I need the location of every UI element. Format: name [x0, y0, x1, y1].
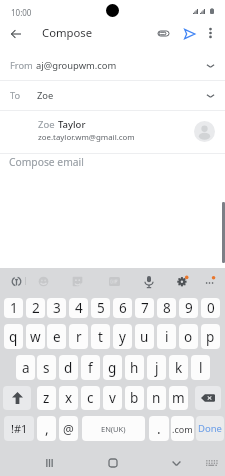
staticText: zoe.taylor.wm@gmail.com	[38, 132, 135, 143]
button[interactable]: s	[37, 355, 56, 380]
button[interactable]: Attach file	[152, 22, 175, 45]
button[interactable]: p	[201, 324, 220, 349]
button[interactable]: a	[16, 355, 35, 380]
staticText: Zoe	[38, 118, 58, 131]
button[interactable]: 6	[113, 298, 132, 318]
staticText: @	[63, 421, 74, 437]
button[interactable]: EN(UK)	[82, 416, 145, 441]
staticText: Zoe	[37, 89, 54, 102]
button[interactable]: j	[147, 355, 166, 380]
button[interactable]: To	[0, 81, 225, 110]
button[interactable]: Done	[196, 416, 224, 441]
staticText: EN(UK)	[101, 424, 126, 434]
staticText: z	[43, 389, 50, 407]
button[interactable]: n	[147, 386, 166, 410]
button[interactable]: 9	[179, 298, 198, 318]
button[interactable]: More options	[199, 22, 221, 44]
staticText: l	[199, 359, 203, 377]
staticText: h	[130, 359, 139, 377]
staticText: ,	[45, 420, 49, 438]
button[interactable]: @	[59, 416, 78, 441]
button[interactable]: 5	[91, 298, 110, 318]
button[interactable]: Settings	[173, 271, 193, 291]
button[interactable]: u	[135, 324, 154, 349]
button[interactable]: r	[69, 324, 88, 349]
staticText: c	[87, 389, 94, 407]
button[interactable]: .	[149, 416, 169, 441]
button[interactable]: o	[179, 324, 198, 349]
staticText: 8	[163, 299, 171, 317]
button[interactable]: 0	[201, 298, 220, 318]
button[interactable]: 3	[47, 298, 66, 318]
button[interactable]: Voice input	[139, 272, 159, 292]
button[interactable]: l	[191, 355, 210, 380]
staticText: To	[10, 89, 21, 102]
button[interactable]: 7	[135, 298, 154, 318]
staticText: m	[172, 389, 185, 407]
button[interactable]: h	[125, 355, 144, 380]
button[interactable]: c	[81, 386, 100, 410]
staticText: x	[65, 389, 73, 407]
button[interactable]: Google	[6, 271, 26, 291]
staticText: i	[165, 328, 169, 346]
button[interactable]: q	[4, 324, 23, 349]
button[interactable]: Compose email	[0, 154, 225, 178]
button[interactable]: !#1	[4, 416, 34, 441]
button[interactable]: x	[59, 386, 78, 410]
staticText: Done	[198, 422, 222, 435]
button[interactable]: 2	[26, 298, 45, 318]
button[interactable]: Back	[4, 22, 27, 45]
button[interactable]: g	[103, 355, 122, 380]
staticText: w	[30, 328, 41, 346]
staticText: 7	[141, 299, 149, 317]
staticText: Taylor	[58, 118, 86, 131]
button[interactable]: Recents	[40, 454, 58, 472]
staticText: 1	[10, 299, 18, 317]
button[interactable]: 8	[157, 298, 176, 318]
button[interactable]: f	[81, 355, 100, 380]
button[interactable]: w	[26, 324, 45, 349]
staticText: a	[22, 359, 30, 377]
staticText: 3	[53, 299, 61, 317]
button[interactable]: z	[37, 386, 56, 410]
button[interactable]: ,	[37, 416, 56, 441]
button[interactable]: .com	[171, 416, 194, 441]
button[interactable]: e	[47, 324, 66, 349]
button[interactable]: More options	[199, 271, 219, 291]
button[interactable]: y	[113, 324, 132, 349]
button[interactable]: b	[125, 386, 144, 410]
button[interactable]: Send	[178, 22, 201, 45]
staticText: r	[76, 328, 82, 346]
button[interactable]: 1	[4, 298, 23, 318]
button[interactable]: Emoji	[33, 271, 53, 291]
staticText: b	[130, 389, 139, 407]
staticText: v	[109, 389, 116, 407]
button[interactable]: i	[157, 324, 176, 349]
button[interactable]: Hide keyboard	[167, 454, 185, 472]
button[interactable]: m	[169, 386, 188, 410]
button[interactable]: Zoe	[0, 111, 225, 153]
staticText: y	[119, 328, 126, 346]
staticText: t	[98, 328, 103, 346]
staticText: g	[108, 359, 117, 377]
staticText: k	[175, 359, 183, 377]
staticText: e	[53, 328, 61, 346]
button[interactable]: Backspace	[195, 386, 221, 410]
button[interactable]: k	[169, 355, 188, 380]
staticText: p	[206, 328, 215, 346]
staticText: 10:00	[11, 7, 32, 18]
button[interactable]: Switch keyboard	[204, 456, 218, 470]
staticText: s	[43, 359, 50, 377]
staticText: .	[157, 420, 161, 438]
button[interactable]: Home	[104, 454, 122, 472]
button[interactable]: From	[0, 51, 225, 80]
button[interactable]: Shift	[3, 386, 31, 410]
button[interactable]: GIF	[104, 271, 124, 291]
button[interactable]: Stickers	[67, 271, 87, 291]
button[interactable]: d	[59, 355, 78, 380]
staticText: o	[184, 328, 193, 346]
button[interactable]: t	[91, 324, 110, 349]
staticText: 5	[97, 299, 105, 317]
button[interactable]: 4	[69, 298, 88, 318]
button[interactable]: v	[103, 386, 122, 410]
